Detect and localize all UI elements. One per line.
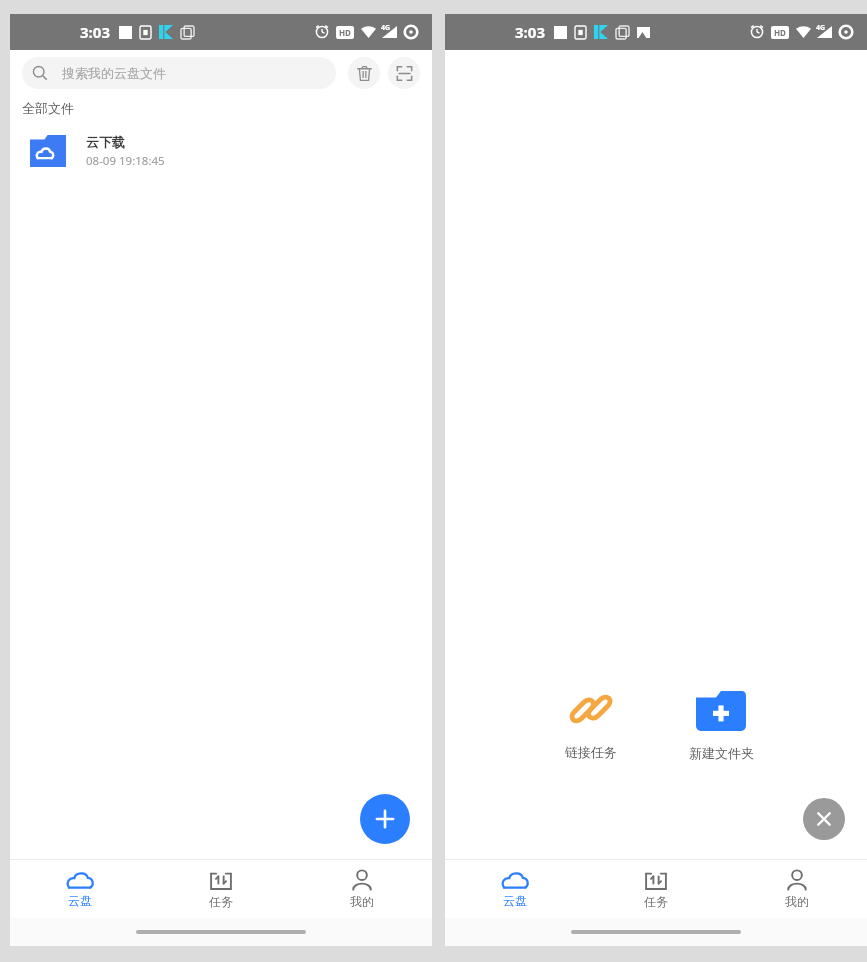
staticText: 3:03 [515,22,545,42]
staticText: HD [774,27,786,38]
button[interactable]: 云下载 [10,122,432,180]
button[interactable]: 我的 [726,860,867,918]
button[interactable]: 我的 [291,860,432,918]
staticText: HD [339,27,351,38]
staticText: 4G [816,23,826,33]
staticText: 云盘 [68,893,92,908]
staticText: 全部文件 [22,100,74,116]
button[interactable]: 云盘 [445,860,585,918]
staticText: 任务 [209,894,233,909]
staticText: 新建文件夹 [689,745,754,761]
staticText: 任务 [644,894,668,909]
staticText: 我的 [785,894,809,909]
staticText: 云下载 [86,134,125,150]
button[interactable]: 任务 [150,860,291,918]
staticText: 链接任务 [565,744,617,760]
button[interactable]: Add [360,794,410,844]
button[interactable]: 任务 [585,860,726,918]
staticText: 3:03 [80,22,110,42]
staticText: 08-09 19:18:45 [86,153,165,169]
button[interactable]: Close [803,798,845,840]
button[interactable]: 新建文件夹 [656,682,786,765]
staticText: 我的 [350,894,374,909]
staticText: 4G [381,23,391,33]
button[interactable]: Scan [388,57,420,89]
button[interactable]: 云盘 [10,860,150,918]
staticText: 云盘 [503,893,527,908]
button[interactable]: Delete [348,57,380,89]
button[interactable]: 搜索我的云盘文件 [22,57,336,89]
staticText: 搜索我的云盘文件 [62,65,166,81]
button[interactable]: 链接任务 [526,682,656,764]
